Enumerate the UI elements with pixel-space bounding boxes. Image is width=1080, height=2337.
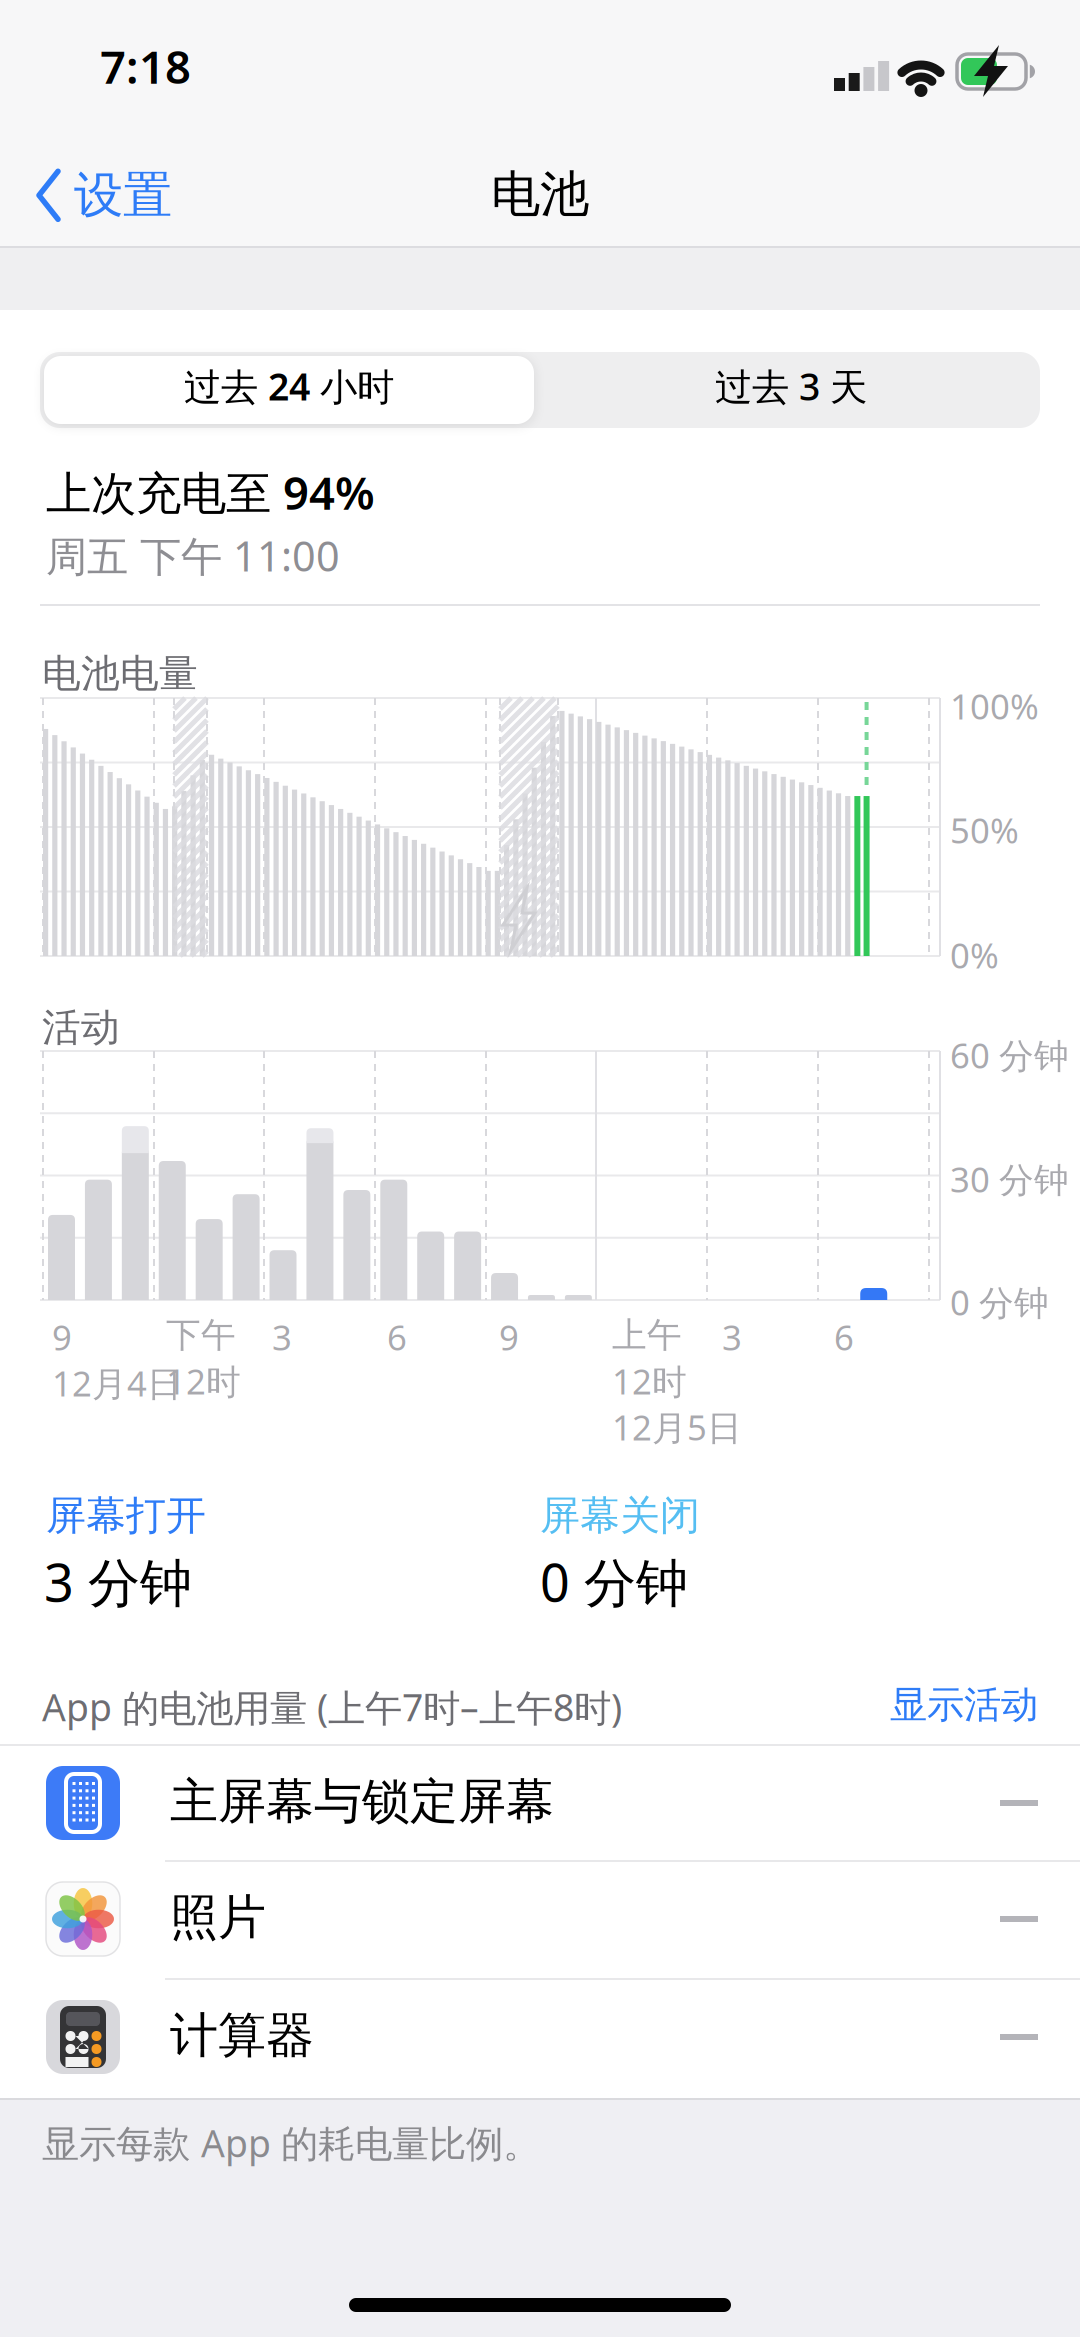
staticText: 12月4日	[52, 1360, 182, 1406]
staticText: 100%	[950, 683, 1039, 729]
button[interactable]: 设置	[37, 165, 172, 226]
staticText: 过去 24 小时	[184, 361, 394, 411]
staticText: 周五 下午 11:00	[46, 528, 340, 583]
staticText: 电池电量	[42, 650, 198, 697]
staticText: 显示每款 App 的耗电量比例。	[42, 2118, 540, 2168]
button[interactable]: 主屏幕与锁定屏幕	[0, 1746, 1080, 1860]
button[interactable]: 计算器	[0, 1980, 1080, 2094]
staticText: 计算器	[170, 2006, 314, 2065]
staticText: 12月5日	[612, 1404, 742, 1450]
staticText: 屏幕关闭	[540, 1491, 700, 1540]
staticText: 下午	[166, 1314, 236, 1357]
staticText: 上次充电至 94%	[46, 462, 375, 522]
staticText: 30 分钟	[950, 1156, 1069, 1202]
staticText: 12时	[612, 1358, 687, 1404]
staticText: 上午	[612, 1314, 682, 1357]
button[interactable]: 过去 3 天	[546, 356, 1036, 424]
staticText: 活动	[42, 1004, 120, 1051]
staticText: 60 分钟	[950, 1032, 1069, 1078]
staticText: 0 分钟	[950, 1279, 1049, 1325]
staticText: 0 分钟	[540, 1547, 688, 1616]
staticText: 12时	[166, 1358, 241, 1404]
staticText: 设置	[74, 165, 172, 226]
staticText: 3	[272, 1314, 292, 1360]
staticText: 显示活动	[890, 1682, 1038, 1728]
staticText: 0%	[950, 932, 999, 978]
button[interactable]: 照片	[0, 1862, 1080, 1976]
staticText: App 的电池用量 (上午7时–上午8时)	[42, 1682, 622, 1732]
staticText: 6	[834, 1314, 854, 1360]
staticText: 3	[722, 1314, 742, 1360]
staticText: 9	[499, 1314, 519, 1360]
staticText: 50%	[950, 807, 1019, 853]
staticText: 9	[52, 1314, 72, 1360]
staticText: 屏幕打开	[46, 1491, 206, 1540]
button[interactable]: 过去 24 小时	[44, 356, 534, 424]
staticText: 主屏幕与锁定屏幕	[170, 1772, 554, 1831]
staticText: 电池	[491, 164, 589, 225]
staticText: 7:18	[100, 36, 191, 96]
button[interactable]: 显示活动	[890, 1682, 1038, 1728]
staticText: 过去 3 天	[715, 361, 867, 411]
staticText: 照片	[170, 1888, 266, 1947]
staticText: 6	[387, 1314, 407, 1360]
staticText: 3 分钟	[44, 1547, 192, 1616]
